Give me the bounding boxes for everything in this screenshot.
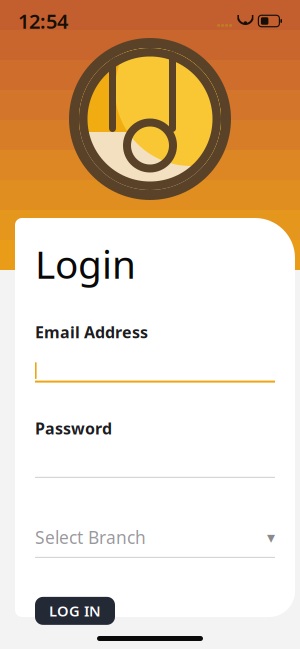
button[interactable] xyxy=(35,361,275,383)
staticText: Password xyxy=(35,418,112,439)
staticText: 12:54 xyxy=(18,8,68,34)
staticText: Select Branch xyxy=(35,526,146,549)
button[interactable] xyxy=(35,457,275,478)
staticText: Login xyxy=(35,238,136,289)
staticText: ▾ xyxy=(267,528,275,546)
button[interactable]: LOG IN xyxy=(35,597,115,625)
staticText: Email Address xyxy=(35,321,148,342)
staticText: LOG IN xyxy=(49,601,101,621)
staticText: .... xyxy=(216,11,232,31)
button[interactable]: Select Branch xyxy=(35,526,275,558)
